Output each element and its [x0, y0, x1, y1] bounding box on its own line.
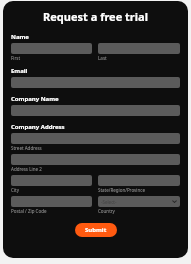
button[interactable]: [98, 43, 180, 54]
staticText: Last: [98, 55, 107, 61]
staticText: State/Region/Province: [98, 187, 145, 193]
staticText: Postal / Zip Code: [11, 208, 47, 214]
staticText: Company Address: [11, 123, 65, 131]
staticText: Address Line 2: [11, 166, 42, 172]
button[interactable]: [11, 43, 92, 54]
button[interactable]: [98, 175, 180, 186]
staticText: Request a free trial: [11, 9, 180, 24]
staticText: -Select-: [101, 199, 117, 205]
button[interactable]: [11, 175, 92, 186]
staticText: Submit: [85, 226, 107, 234]
button[interactable]: Submit: [75, 223, 117, 237]
staticText: Street Address: [11, 145, 42, 151]
staticText: Name: [11, 33, 29, 41]
staticText: Email: [11, 67, 28, 75]
staticText: City: [11, 187, 19, 193]
staticText: Company Name: [11, 95, 59, 103]
button[interactable]: Country selector: [98, 196, 180, 207]
staticText: First: [11, 55, 21, 61]
staticText: Country: [98, 208, 115, 214]
button[interactable]: [11, 196, 92, 207]
